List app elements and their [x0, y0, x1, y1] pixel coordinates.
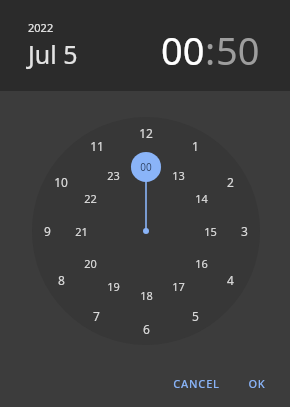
- button[interactable]: 7: [93, 308, 100, 324]
- button[interactable]: 10: [54, 174, 68, 190]
- button[interactable]: 1: [192, 138, 199, 154]
- button[interactable]: 00: [161, 24, 205, 76]
- button[interactable]: 6: [143, 321, 150, 337]
- button[interactable]: 21: [75, 224, 88, 239]
- button[interactable]: 4: [227, 272, 234, 288]
- staticText: OK: [248, 376, 266, 391]
- button[interactable]: 00: [140, 160, 152, 174]
- button[interactable]: CANCEL: [165, 370, 228, 397]
- button[interactable]: 5: [192, 308, 199, 324]
- button[interactable]: 3: [241, 223, 248, 239]
- button[interactable]: 20: [84, 256, 97, 271]
- staticText: CANCEL: [173, 376, 220, 391]
- button[interactable]: 11: [90, 138, 104, 154]
- button[interactable]: 9: [44, 223, 51, 239]
- button[interactable]: 22: [84, 191, 97, 206]
- staticText: :: [205, 24, 216, 76]
- button[interactable]: OK: [240, 370, 274, 397]
- button[interactable]: 17: [172, 279, 185, 294]
- button[interactable]: 50: [216, 24, 260, 76]
- button[interactable]: 16: [195, 256, 208, 271]
- button[interactable]: 19: [107, 279, 120, 294]
- staticText: 00: [161, 24, 205, 76]
- button[interactable]: 14: [195, 191, 208, 206]
- staticText: Jul 5: [28, 37, 78, 71]
- button[interactable]: 8: [58, 272, 65, 288]
- button[interactable]: 23: [107, 168, 120, 183]
- button[interactable]: 13: [172, 168, 185, 183]
- staticText: 2022: [28, 20, 54, 35]
- button[interactable]: 12: [139, 125, 153, 141]
- button[interactable]: 2: [227, 174, 234, 190]
- button[interactable]: 2022: [26, 18, 80, 73]
- staticText: 50: [216, 24, 260, 76]
- button[interactable]: 15: [204, 224, 217, 239]
- button[interactable]: 18: [140, 288, 153, 303]
